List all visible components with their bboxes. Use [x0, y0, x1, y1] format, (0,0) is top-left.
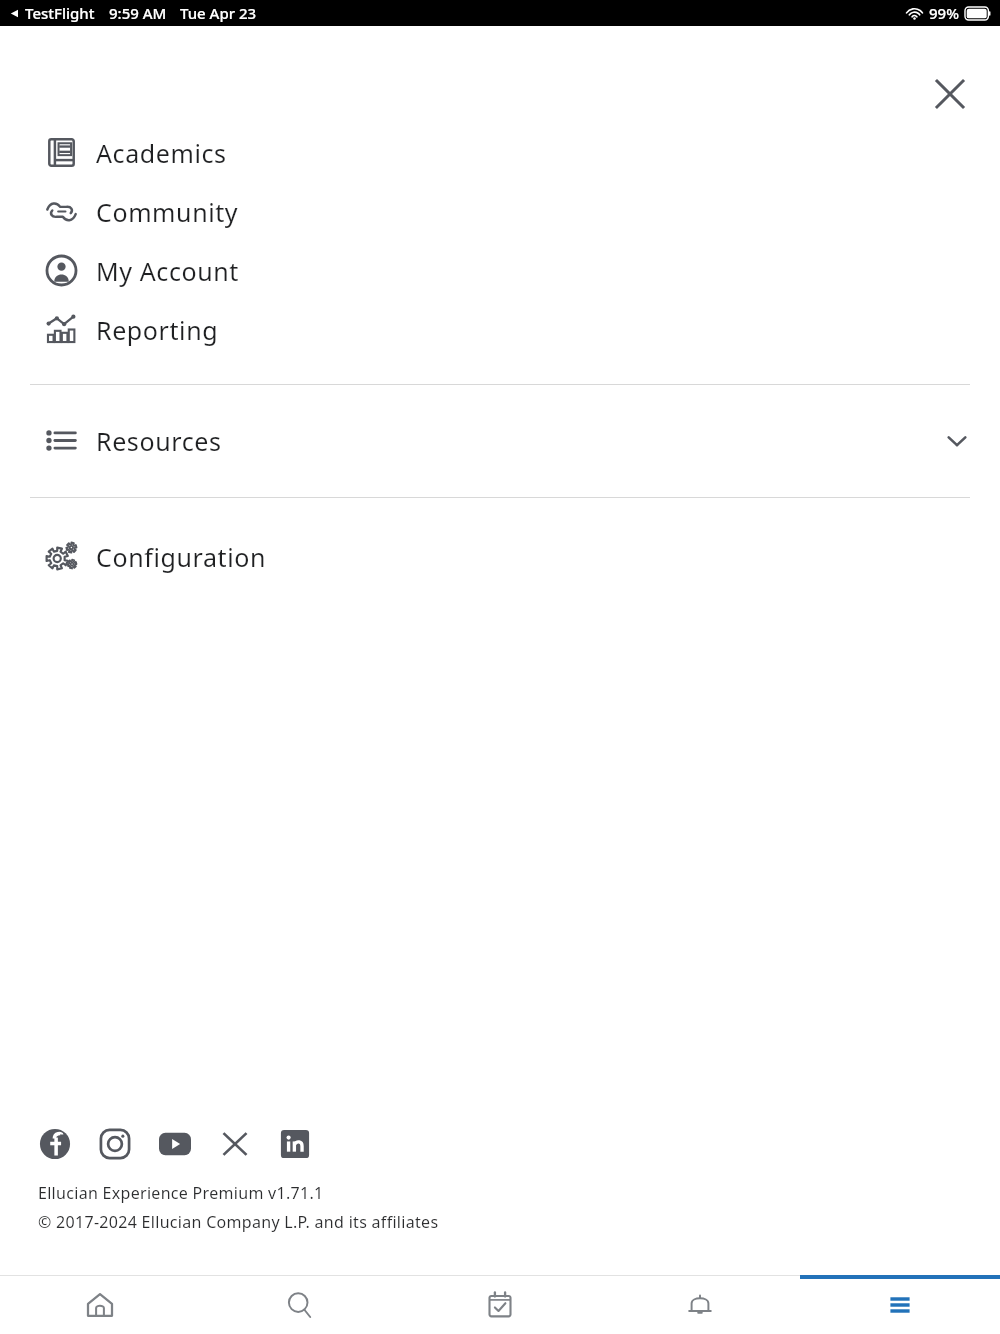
button[interactable]: Configuration	[0, 527, 1000, 586]
staticText: Reporting	[96, 313, 219, 347]
staticText: Ellucian Experience Premium v1.71.1	[38, 1182, 324, 1204]
button[interactable]: Search	[200, 1275, 400, 1334]
button[interactable]: Home	[0, 1275, 200, 1334]
button[interactable]: Resources	[0, 411, 1000, 470]
button[interactable]: Reporting	[0, 300, 1000, 359]
staticText: Academics	[96, 136, 227, 170]
staticText: 99%	[929, 3, 959, 23]
button[interactable]: Notifications	[600, 1275, 800, 1334]
button[interactable]: Close	[922, 66, 978, 122]
button[interactable]: My Account	[0, 241, 1000, 300]
button[interactable]: YouTube	[158, 1127, 191, 1160]
staticText: 9:59 AM	[109, 3, 167, 23]
staticText: Tue Apr 23	[180, 3, 257, 23]
staticText: TestFlight	[25, 3, 95, 23]
button[interactable]: Academics	[0, 123, 1000, 182]
staticText: © 2017-2024 Ellucian Company L.P. and it…	[38, 1211, 439, 1233]
button[interactable]: LinkedIn	[278, 1127, 311, 1160]
staticText: Resources	[96, 424, 222, 458]
button[interactable]: Facebook	[38, 1127, 71, 1160]
button[interactable]: Instagram	[98, 1127, 131, 1160]
button[interactable]: Community	[0, 182, 1000, 241]
button[interactable]: Calendar	[400, 1275, 600, 1334]
staticText: Configuration	[96, 540, 266, 574]
staticText: My Account	[96, 254, 239, 288]
staticText: Community	[96, 195, 239, 229]
button[interactable]: X	[218, 1127, 251, 1160]
button[interactable]: Menu	[800, 1275, 1000, 1334]
